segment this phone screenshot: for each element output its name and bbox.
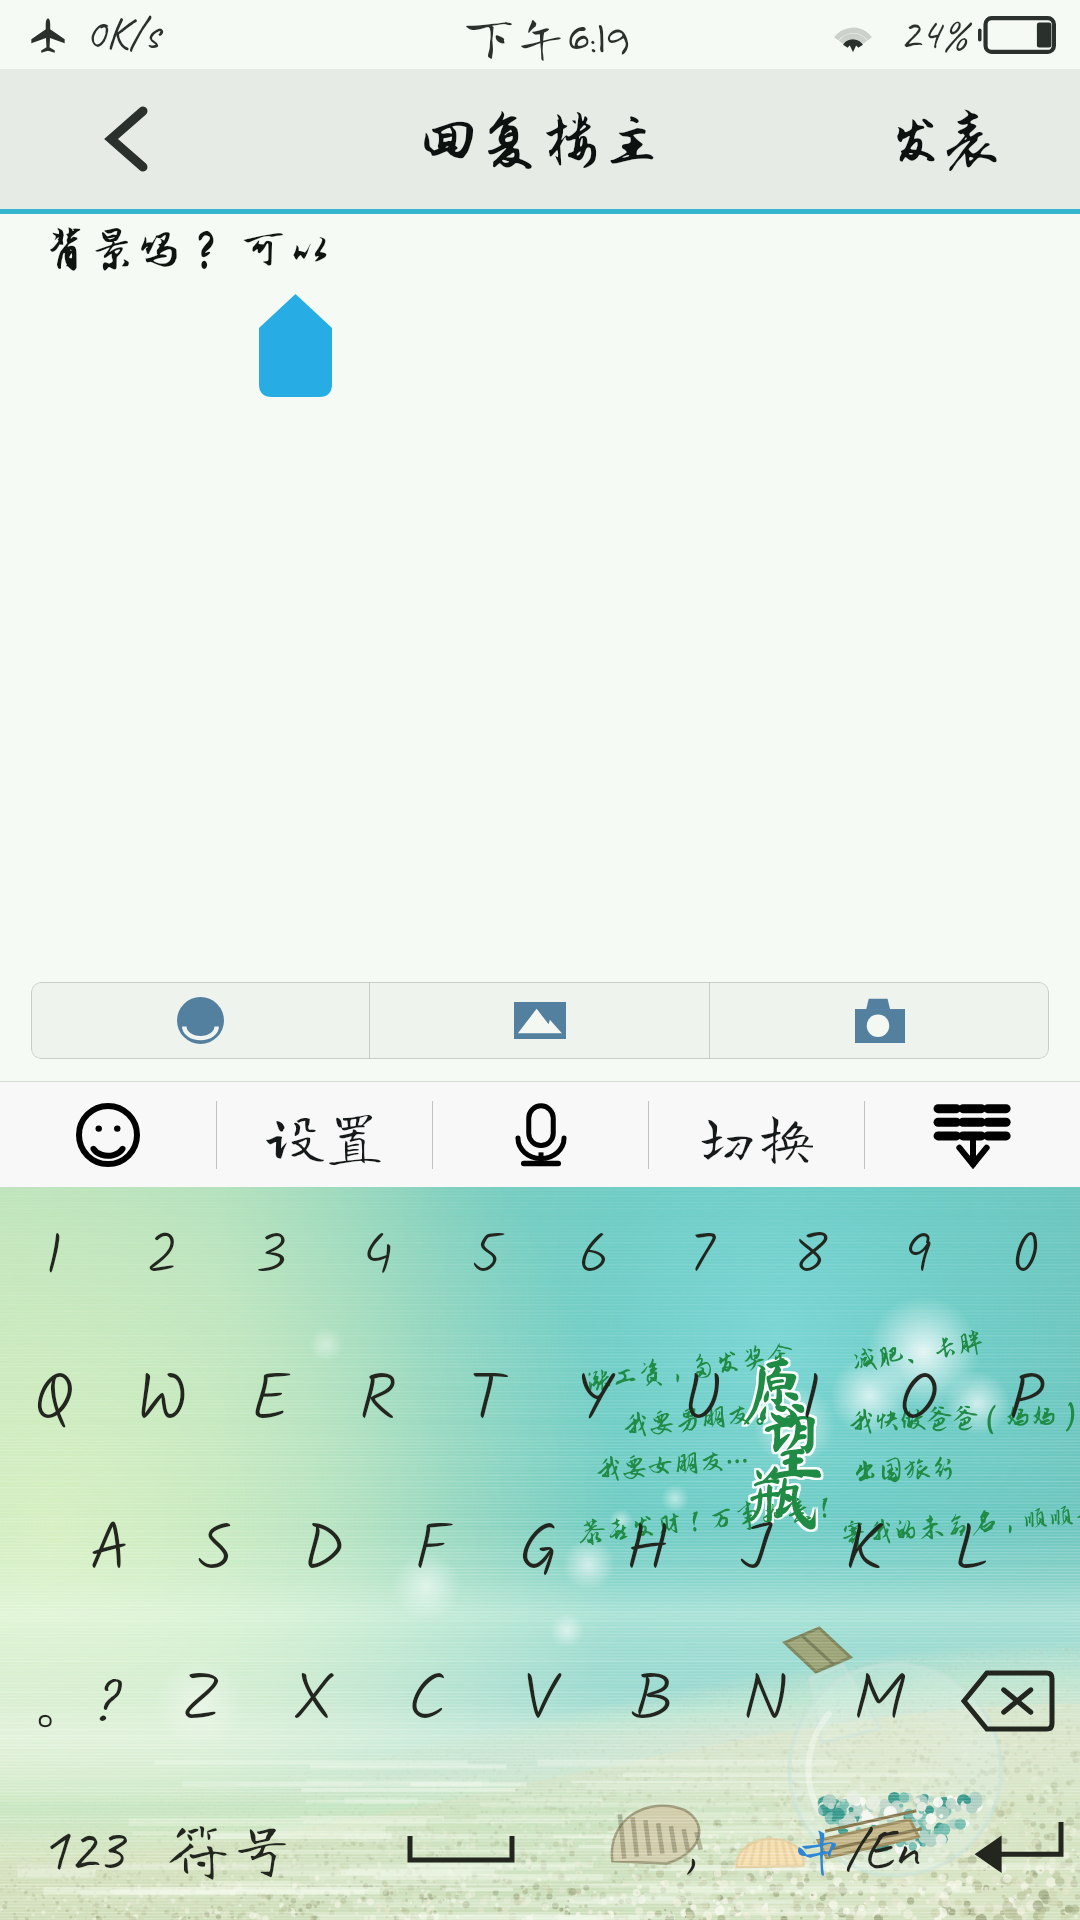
button[interactable]: B [596,1626,709,1776]
staticText: 望 [758,1407,832,1481]
button[interactable]: S [162,1476,269,1626]
staticText: 5 [471,1212,502,1301]
staticText: 6 [578,1212,610,1301]
staticText: U [682,1349,722,1454]
button[interactable]: Z [145,1626,257,1776]
button[interactable]: Hide keyboard [865,1082,1080,1187]
staticText: R [359,1349,397,1454]
staticText: 望 [754,1409,828,1483]
staticText: 瓶 [746,1457,820,1531]
button[interactable]: Enter [952,1776,1080,1920]
button[interactable]: 7 [648,1187,756,1326]
button[interactable]: Camera [710,982,1049,1059]
staticText: F [414,1499,448,1604]
button[interactable]: 3 [216,1187,324,1326]
staticText: 寄我的未命名，顺顺利利！ [839,1493,1080,1550]
button[interactable]: M [822,1626,935,1776]
staticText: 4 [362,1212,394,1301]
staticText: 愿 [737,1352,811,1426]
staticText: 发表 [888,110,1000,172]
button[interactable]: N [709,1626,822,1776]
button[interactable]: 2 [108,1187,216,1326]
button[interactable]: 。? [0,1626,145,1776]
button[interactable]: Backspace [935,1626,1080,1776]
staticText: 涨工资，多发奖金 [584,1339,795,1396]
button[interactable]: F [377,1476,485,1626]
staticText: 减肥、长胖 [850,1327,986,1376]
staticText: 0K/s [85,4,160,62]
staticText: V [522,1649,558,1754]
staticText: 我要男朋友。。 [621,1395,812,1440]
button[interactable]: I [756,1326,864,1476]
staticText: A [89,1499,129,1604]
button[interactable]: Back [0,69,210,209]
button[interactable]: 中 [756,1776,952,1920]
staticText: 望 [756,1409,830,1483]
staticText: 24% [899,4,968,62]
staticText: 123 [40,1809,124,1887]
button[interactable]: O [864,1326,972,1476]
staticText: 愿 [735,1354,809,1428]
button[interactable]: 发表 [848,69,1080,209]
button[interactable]: W [108,1326,216,1476]
button[interactable]: 0 [972,1187,1080,1326]
button[interactable]: 4 [324,1187,432,1326]
button[interactable]: L [917,1476,1025,1626]
staticText: Y [575,1349,614,1454]
button[interactable]: J [701,1476,809,1626]
button[interactable]: V [483,1626,596,1776]
button[interactable]: T [432,1326,540,1476]
button[interactable]: 9 [864,1187,972,1326]
staticText: O [898,1349,939,1454]
button[interactable]: D [269,1476,377,1626]
staticText: I [800,1349,821,1454]
button[interactable]: Emoji keyboard [0,1082,216,1187]
staticText: J [740,1499,771,1604]
button[interactable]: G [485,1476,593,1626]
button[interactable]: 设置 [217,1082,432,1187]
button[interactable]: ， [626,1776,756,1920]
staticText: T [469,1349,504,1454]
staticText: E [250,1349,290,1454]
button[interactable]: U [648,1326,756,1476]
button[interactable]: P [972,1326,1080,1476]
staticText: H [625,1499,670,1604]
button[interactable]: K [809,1476,917,1626]
staticText: 愿 [739,1352,813,1426]
staticText: 瓶 [748,1459,822,1533]
staticText: 愿 [735,1356,809,1430]
staticText: 。? [33,1665,113,1738]
button[interactable]: Y [540,1326,648,1476]
button[interactable]: E [216,1326,324,1476]
button[interactable]: 6 [540,1187,648,1326]
button[interactable]: Voice input [433,1082,648,1187]
button[interactable]: Emoji [31,982,369,1059]
button[interactable]: Q [0,1326,108,1476]
button[interactable]: Pictures [370,982,709,1059]
staticText: 望 [754,1411,828,1485]
staticText: 愿 [739,1356,813,1430]
button[interactable]: 切换 [649,1082,864,1187]
button[interactable]: Space [296,1776,626,1920]
staticText: 望 [758,1409,832,1483]
staticText: 出国旅行 [851,1453,957,1486]
staticText: 愿 [737,1356,811,1430]
button[interactable]: 8 [756,1187,864,1326]
button[interactable]: 1 [0,1187,108,1326]
button[interactable]: A [55,1476,162,1626]
button[interactable]: C [370,1626,483,1776]
button[interactable]: 5 [432,1187,540,1326]
staticText: 我要女朋友··· [594,1440,750,1489]
staticText: D [302,1499,344,1604]
staticText: 回复楼主 [418,107,663,175]
staticText: L [953,1499,990,1604]
staticText: 瓶 [744,1461,818,1535]
staticText: C [407,1649,446,1754]
staticText: W [136,1349,188,1454]
button[interactable]: 123 [0,1776,164,1920]
button[interactable]: R [324,1326,432,1476]
button[interactable]: X [257,1626,370,1776]
button[interactable]: H [593,1476,701,1626]
staticText: 背景吗？ 可以 [42,224,334,276]
button[interactable]: 符号 [164,1776,296,1920]
